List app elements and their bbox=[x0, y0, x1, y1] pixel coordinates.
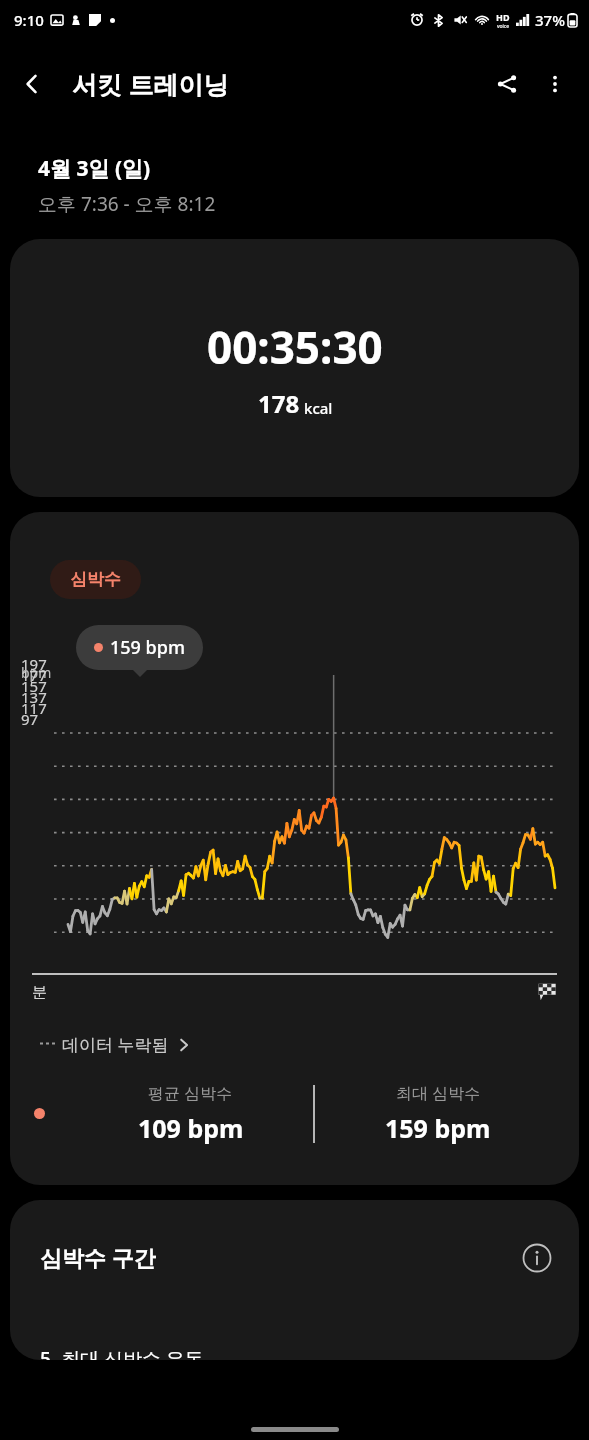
staticText: bpm bbox=[21, 663, 52, 682]
staticText: HD bbox=[496, 11, 510, 23]
staticText: 평균 심박수 bbox=[148, 1082, 233, 1104]
button[interactable]: More options bbox=[531, 60, 579, 108]
staticText: 157 bbox=[21, 676, 47, 696]
staticText: 5. 최대 심박수 운동 bbox=[40, 1346, 204, 1360]
staticText: 137 bbox=[21, 687, 47, 707]
button[interactable]: 159 bpm bbox=[76, 625, 203, 670]
staticText: 178 bbox=[258, 387, 300, 420]
staticText: 37% bbox=[535, 10, 565, 30]
staticText: 159 bpm bbox=[385, 1111, 491, 1145]
staticText: 4월 3일 (일) bbox=[38, 154, 151, 183]
staticText: 109 bpm bbox=[138, 1111, 244, 1145]
staticText: 오후 7:36 - 오후 8:12 bbox=[38, 191, 216, 217]
staticText: 9:10 bbox=[14, 10, 44, 30]
staticText: 심박수 구간 bbox=[40, 1242, 156, 1272]
staticText: 00:35:30 bbox=[207, 317, 383, 377]
staticText: 197 bbox=[21, 654, 47, 674]
button[interactable]: 심박수 bbox=[50, 560, 141, 599]
button[interactable]: Information bbox=[515, 1236, 559, 1280]
button[interactable]: Back bbox=[8, 60, 56, 108]
staticText: 159 bpm bbox=[110, 635, 185, 660]
button[interactable]: Share bbox=[483, 60, 531, 108]
staticText: 최대 심박수 bbox=[396, 1082, 481, 1104]
staticText: 분 bbox=[32, 983, 47, 1002]
staticText: 177 bbox=[21, 665, 47, 685]
staticText: 117 bbox=[21, 698, 47, 718]
staticText: 97 bbox=[21, 709, 39, 729]
staticText: 데이터 누락됨 bbox=[62, 1033, 169, 1056]
staticText: 서킷 트레이닝 bbox=[72, 67, 229, 101]
button[interactable]: 데이터 누락됨 bbox=[34, 1029, 197, 1060]
staticText: 심박수 bbox=[70, 569, 121, 590]
button[interactable]: 00:35:30 bbox=[10, 239, 579, 497]
staticText: voice bbox=[497, 23, 510, 30]
staticText: kcal bbox=[304, 398, 333, 418]
button[interactable]: 심박수 구간 bbox=[10, 1200, 579, 1360]
